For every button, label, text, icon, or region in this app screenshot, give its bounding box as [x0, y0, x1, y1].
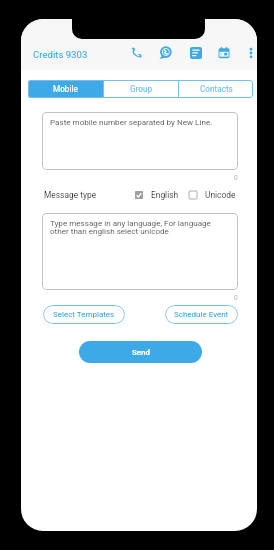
- staticText: Unicode: [205, 190, 236, 200]
- button[interactable]: English: [135, 189, 179, 201]
- button[interactable]: WhatsApp: [157, 44, 174, 61]
- staticText: Send: [132, 348, 150, 357]
- button[interactable]: Unicode: [189, 189, 236, 201]
- staticText: Schedule Event: [174, 310, 229, 319]
- staticText: 0: [234, 174, 238, 182]
- button[interactable]: Group: [104, 80, 178, 98]
- staticText: Contacts: [200, 84, 233, 94]
- button[interactable]: Paste mobile number separated by New Lin…: [42, 112, 238, 170]
- button[interactable]: Send: [79, 341, 202, 363]
- staticText: Message type: [44, 190, 97, 200]
- staticText: Credits 9303: [33, 49, 88, 60]
- button[interactable]: Messages: [187, 44, 204, 61]
- button[interactable]: Schedule Event: [165, 305, 238, 324]
- staticText: Select Templates: [53, 310, 115, 319]
- button[interactable]: Calendar: [215, 44, 232, 61]
- button[interactable]: Credits 9303: [33, 45, 88, 63]
- button[interactable]: Contacts: [179, 80, 253, 98]
- staticText: Group: [130, 84, 153, 94]
- button[interactable]: Type message in any language, For langua…: [42, 213, 238, 290]
- button[interactable]: Select Templates: [43, 305, 125, 324]
- staticText: English: [151, 190, 179, 200]
- staticText: Mobile: [53, 84, 78, 94]
- staticText: 0: [234, 294, 238, 302]
- button[interactable]: Mobile: [28, 80, 103, 98]
- staticText: Paste mobile number separated by New Lin…: [50, 117, 213, 126]
- staticText: Type message in any language, For langua…: [50, 218, 211, 236]
- button[interactable]: More options: [242, 44, 257, 61]
- button[interactable]: Call: [128, 44, 145, 61]
